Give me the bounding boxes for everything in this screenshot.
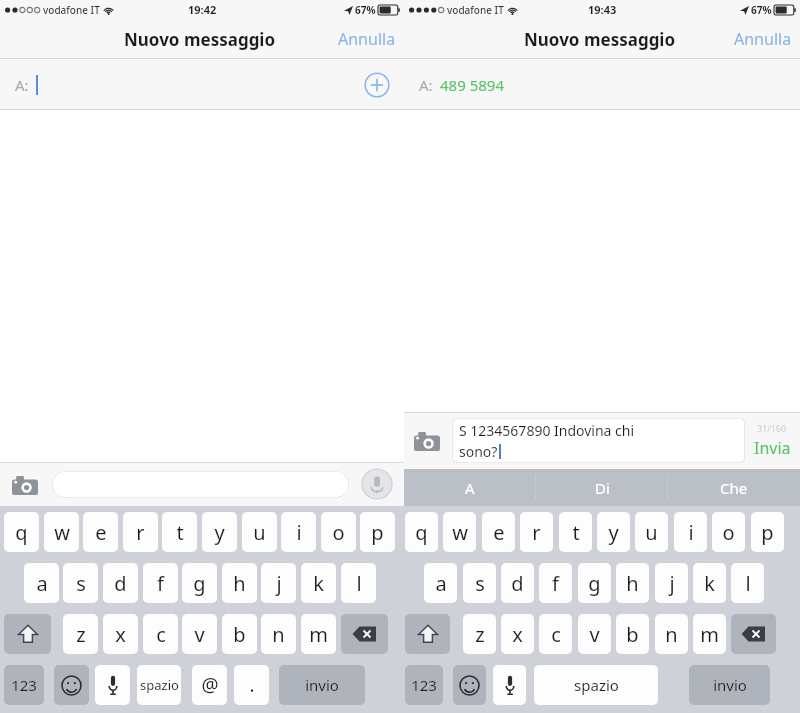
button[interactable]: Cancella: [731, 614, 776, 654]
button[interactable]: Di: [536, 469, 668, 506]
button[interactable]: o: [321, 512, 356, 552]
staticText: o: [332, 519, 345, 546]
button[interactable]: Dettatura: [493, 665, 526, 705]
button[interactable]: Che: [668, 469, 800, 506]
button[interactable]: spazio: [534, 665, 658, 705]
button[interactable]: z: [63, 614, 98, 654]
staticText: Annulla: [338, 28, 396, 50]
button[interactable]: @: [192, 665, 227, 705]
button[interactable]: b: [222, 614, 257, 654]
button[interactable]: j: [655, 563, 688, 603]
staticText: t: [176, 519, 184, 546]
button[interactable]: i: [674, 512, 707, 552]
button[interactable]: e: [482, 512, 515, 552]
button[interactable]: j: [261, 563, 296, 603]
staticText: a: [36, 570, 48, 597]
button[interactable]: d: [103, 563, 138, 603]
button[interactable]: b: [616, 614, 649, 654]
staticText: z: [76, 621, 86, 648]
button[interactable]: l: [731, 563, 764, 603]
button[interactable]: [52, 471, 349, 498]
button[interactable]: c: [539, 614, 572, 654]
other: Cancella: [741, 625, 766, 643]
staticText: s: [76, 570, 86, 597]
button[interactable]: n: [261, 614, 296, 654]
button[interactable]: d: [501, 563, 534, 603]
button[interactable]: n: [655, 614, 688, 654]
button[interactable]: c: [143, 614, 178, 654]
button[interactable]: v: [578, 614, 611, 654]
staticText: x: [512, 621, 523, 648]
button[interactable]: Fotocamera: [414, 430, 440, 451]
staticText: k: [704, 570, 715, 597]
button[interactable]: x: [501, 614, 534, 654]
button[interactable]: Emoji: [453, 665, 486, 705]
button[interactable]: invio: [279, 665, 365, 705]
button[interactable]: Dettatura: [95, 665, 130, 705]
button[interactable]: f: [539, 563, 572, 603]
button[interactable]: Emoji: [54, 665, 89, 705]
button[interactable]: spazio: [137, 665, 181, 705]
button[interactable]: u: [635, 512, 668, 552]
staticText: i: [688, 519, 694, 546]
button[interactable]: g: [578, 563, 611, 603]
button[interactable]: Registra audio: [362, 469, 392, 499]
button[interactable]: a: [424, 563, 457, 603]
button[interactable]: Aggiungi contatto: [364, 72, 390, 98]
button[interactable]: a: [24, 563, 59, 603]
button[interactable]: i: [281, 512, 316, 552]
button[interactable]: t: [559, 512, 592, 552]
button[interactable]: w: [443, 512, 476, 552]
button[interactable]: y: [202, 512, 237, 552]
button[interactable]: x: [103, 614, 138, 654]
button[interactable]: o: [712, 512, 745, 552]
button[interactable]: r: [123, 512, 158, 552]
button[interactable]: 123: [4, 665, 44, 705]
button[interactable]: h: [222, 563, 257, 603]
button[interactable]: Maiuscole: [405, 614, 450, 654]
button[interactable]: y: [597, 512, 630, 552]
staticText: m: [309, 621, 328, 648]
button[interactable]: z: [463, 614, 496, 654]
button[interactable]: m: [693, 614, 726, 654]
staticText: Che: [720, 478, 748, 498]
button[interactable]: q: [405, 512, 438, 552]
staticText: h: [233, 570, 246, 597]
button[interactable]: l: [341, 563, 376, 603]
button[interactable]: f: [143, 563, 178, 603]
staticText: q: [415, 519, 428, 546]
button[interactable]: Annulla: [726, 22, 800, 56]
button[interactable]: Maiuscole: [4, 614, 51, 654]
staticText: 19:43: [588, 2, 617, 17]
button[interactable]: Annulla: [330, 22, 404, 56]
button[interactable]: s: [463, 563, 496, 603]
button[interactable]: g: [182, 563, 217, 603]
button[interactable]: Cancella: [341, 614, 388, 654]
other: Emoji: [61, 675, 82, 696]
button[interactable]: A: [404, 469, 536, 506]
button[interactable]: r: [520, 512, 553, 552]
button[interactable]: q: [4, 512, 39, 552]
button[interactable]: u: [242, 512, 277, 552]
button[interactable]: e: [83, 512, 118, 552]
other: Cancella: [352, 625, 377, 643]
button[interactable]: t: [162, 512, 197, 552]
button[interactable]: 123: [405, 665, 443, 705]
staticText: y: [214, 519, 225, 546]
button[interactable]: k: [693, 563, 726, 603]
button[interactable]: v: [182, 614, 217, 654]
button[interactable]: m: [301, 614, 336, 654]
button[interactable]: p: [751, 512, 784, 552]
button[interactable]: .: [234, 665, 269, 705]
button[interactable]: S 1234567890 Indovina chi: [452, 418, 745, 463]
staticText: u: [253, 519, 266, 546]
button[interactable]: Fotocamera: [12, 474, 38, 495]
button[interactable]: 31/160: [750, 422, 794, 459]
button[interactable]: h: [616, 563, 649, 603]
button[interactable]: invio: [689, 665, 770, 705]
button[interactable]: s: [63, 563, 98, 603]
staticText: x: [115, 621, 126, 648]
button[interactable]: p: [360, 512, 395, 552]
button[interactable]: k: [301, 563, 336, 603]
button[interactable]: w: [44, 512, 79, 552]
